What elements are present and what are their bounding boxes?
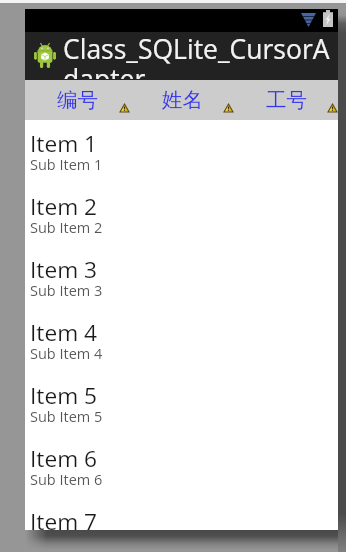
other: Download	[301, 13, 316, 27]
staticText: 编号	[57, 87, 98, 113]
staticText: Sub Item 6	[30, 470, 103, 490]
staticText: Item 1	[30, 128, 98, 159]
staticText: Item 5	[30, 380, 98, 411]
staticText: Item 4	[30, 317, 98, 348]
staticText: Sub Item 3	[30, 281, 103, 301]
staticText: Sub Item 4	[30, 344, 103, 364]
staticText: Item 2	[30, 191, 98, 222]
button[interactable]: 编号	[25, 80, 130, 120]
button[interactable]: Item 3	[25, 246, 338, 309]
staticText: Item 7	[30, 506, 98, 530]
staticText: Sub Item 5	[30, 407, 103, 427]
button[interactable]: Item 5	[25, 372, 338, 435]
button[interactable]: Item 6	[25, 435, 338, 498]
staticText: Sub Item 2	[30, 218, 103, 238]
button[interactable]: Item 1	[25, 120, 338, 183]
button[interactable]: 姓名	[130, 80, 234, 120]
button[interactable]: Item 2	[25, 183, 338, 246]
staticText: Sub Item 1	[30, 155, 103, 175]
staticText: Class_SQLite_CursorAdapter	[63, 31, 338, 79]
button[interactable]: Item 7	[25, 498, 338, 530]
button[interactable]: 工号	[234, 80, 338, 120]
other: Battery charging	[323, 10, 333, 27]
button[interactable]: Item 4	[25, 309, 338, 372]
staticText: Item 3	[30, 254, 98, 285]
staticText: 姓名	[162, 87, 203, 113]
staticText: 工号	[266, 87, 307, 113]
staticText: Item 6	[30, 443, 98, 474]
